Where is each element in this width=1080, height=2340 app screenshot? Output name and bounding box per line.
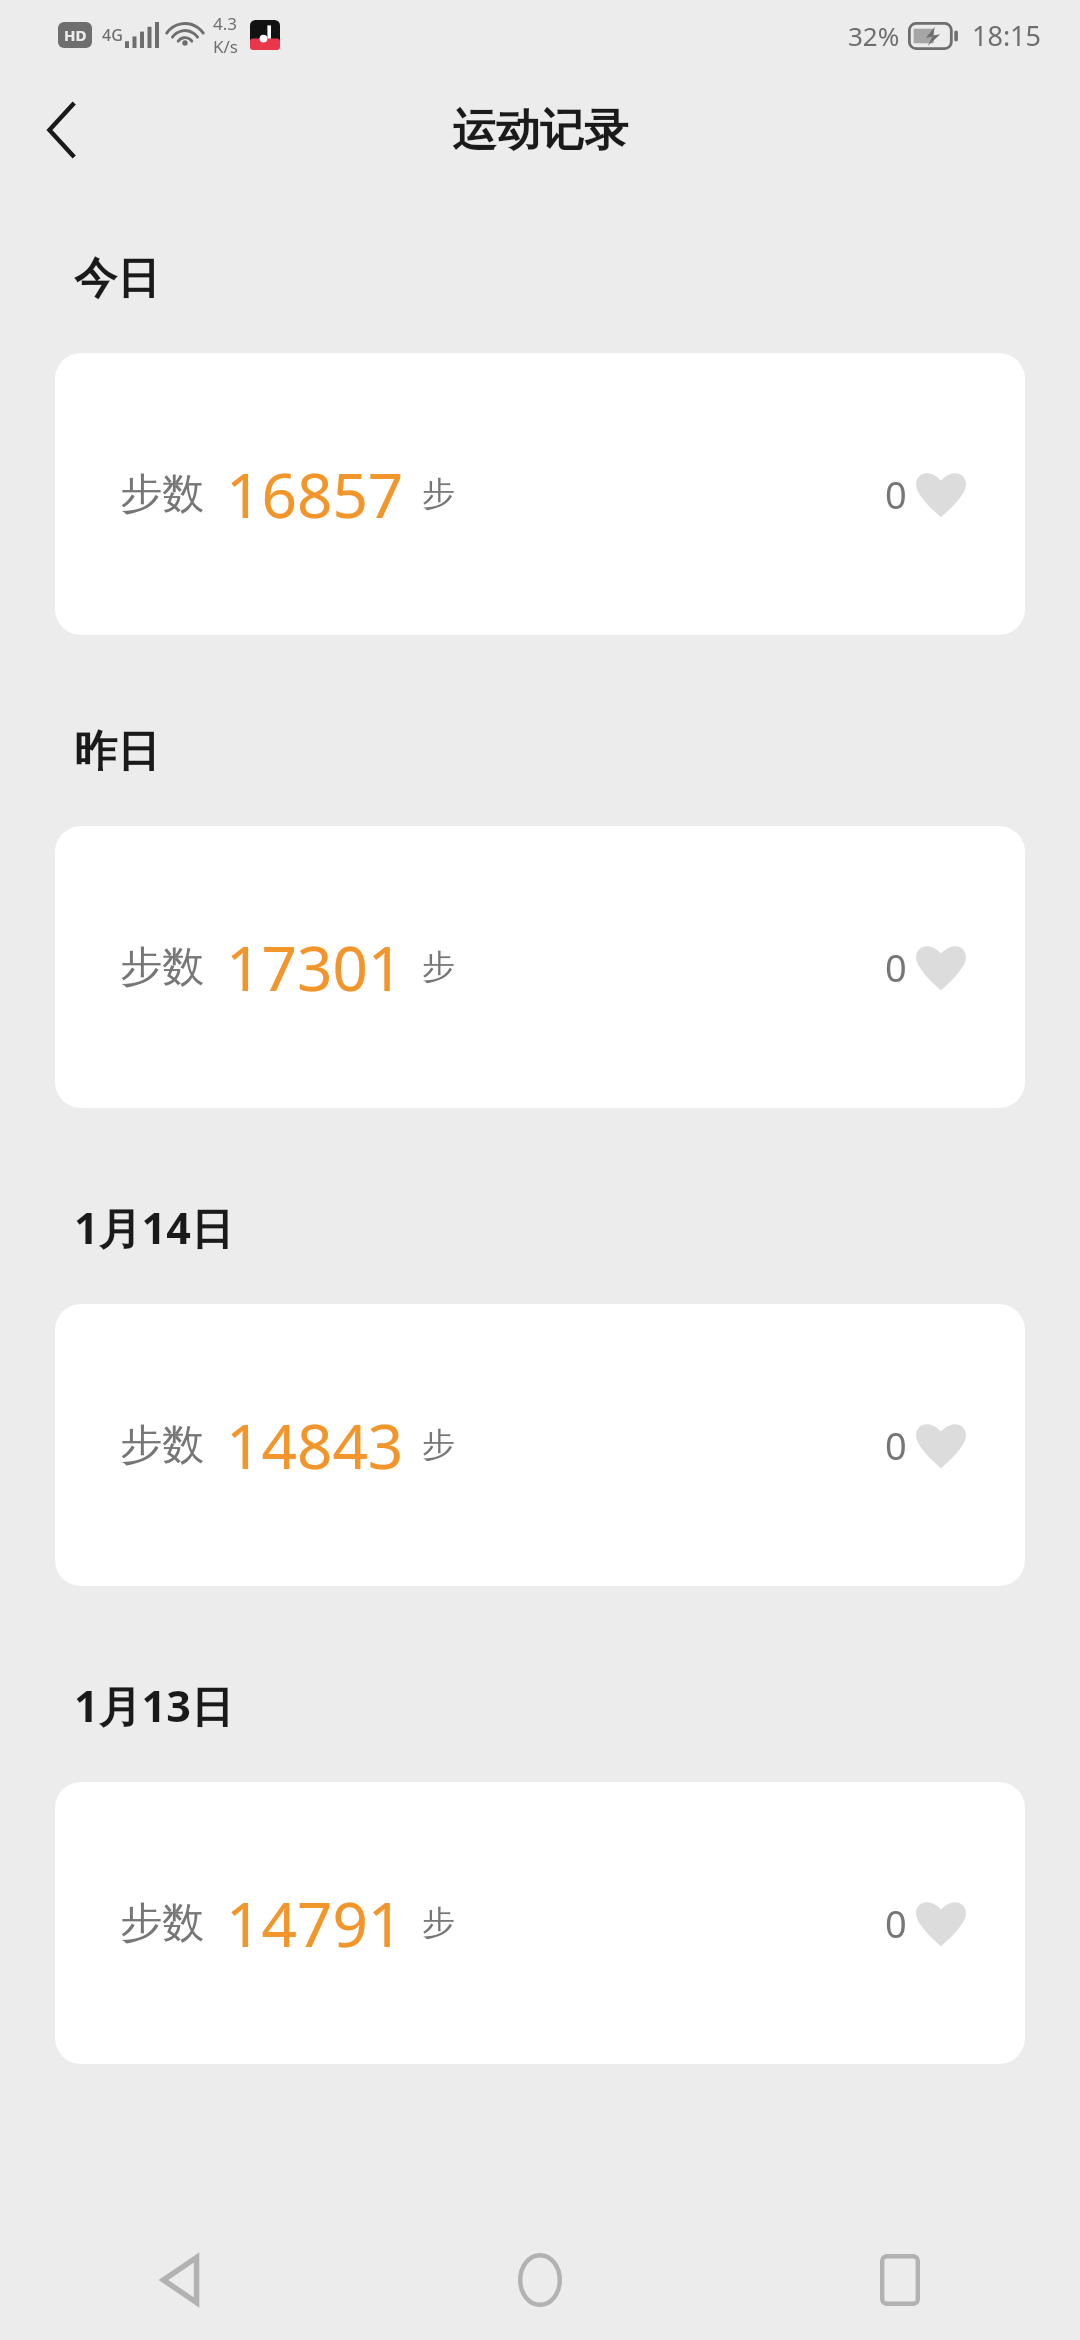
staticText: 0 [885, 468, 907, 520]
staticText: 0 [885, 1419, 907, 1471]
button[interactable]: 步数 [55, 353, 1025, 635]
staticText: 运动记录 [452, 103, 628, 158]
staticText: 14791 [226, 1881, 404, 1965]
staticText: 0 [885, 941, 907, 993]
button[interactable]: 步数 [55, 826, 1025, 1108]
staticText: 1月13日 [74, 1676, 234, 1735]
staticText: 步数 [120, 941, 204, 994]
staticText: 0 [885, 1897, 907, 1949]
staticText: 16857 [226, 452, 404, 536]
staticText: 1月14日 [74, 1198, 234, 1257]
staticText: 32% [848, 18, 900, 53]
staticText: HD [64, 25, 87, 45]
button[interactable]: Back [18, 85, 108, 175]
staticText: 步数 [120, 1419, 204, 1472]
button[interactable]: Back [0, 2220, 360, 2340]
staticText: 今日 [74, 252, 160, 306]
staticText: 4.3 [213, 12, 238, 35]
staticText: 步 [422, 1424, 455, 1466]
button[interactable]: Home [360, 2220, 720, 2340]
button[interactable]: 步数 [55, 1782, 1025, 2064]
button[interactable]: Recents [720, 2220, 1080, 2340]
staticText: 步 [422, 1902, 455, 1944]
staticText: K/s [213, 35, 238, 58]
staticText: 4G [102, 24, 123, 46]
staticText: 17301 [226, 925, 404, 1009]
staticText: 18:15 [972, 17, 1042, 54]
staticText: 步数 [120, 468, 204, 521]
staticText: 步 [422, 946, 455, 988]
staticText: 步 [422, 473, 455, 515]
button[interactable]: 步数 [55, 1304, 1025, 1586]
staticText: 昨日 [74, 725, 160, 779]
staticText: 14843 [226, 1403, 404, 1487]
staticText: 步数 [120, 1897, 204, 1950]
